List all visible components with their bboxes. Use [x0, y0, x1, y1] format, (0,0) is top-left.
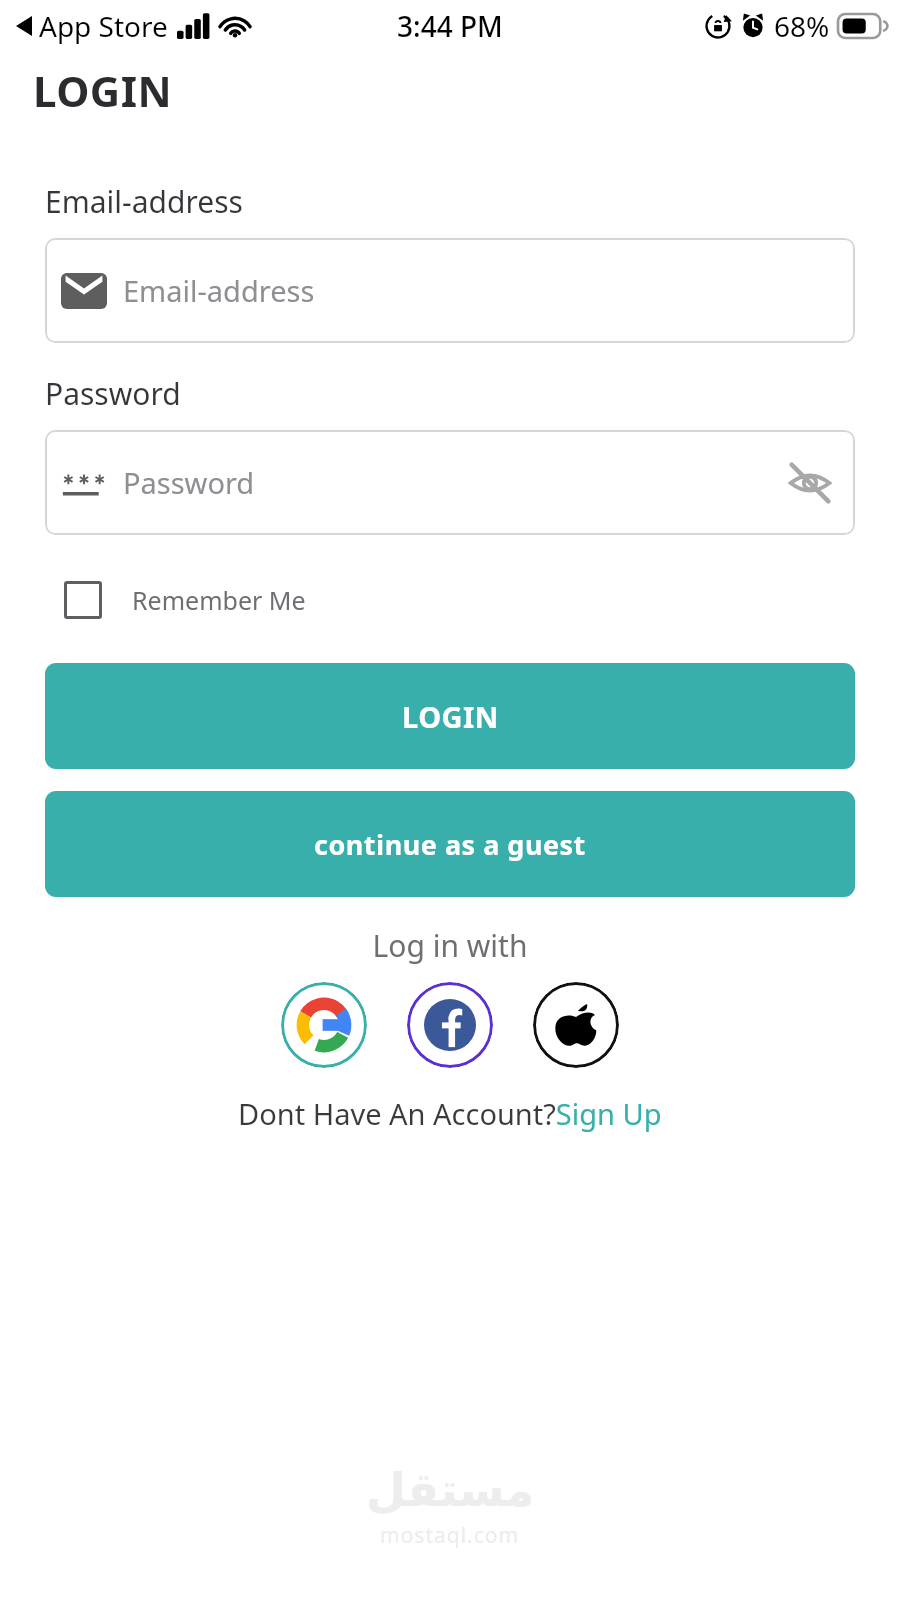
staticText: Email-address [123, 271, 315, 310]
staticText: continue as a guest [314, 826, 586, 863]
staticText: 3:44 PM [397, 7, 503, 45]
button[interactable]: continue as a guest [45, 791, 855, 897]
staticText: Email-address [45, 181, 243, 222]
staticText: Log in with [0, 925, 900, 966]
staticText: Password [123, 463, 255, 502]
button[interactable]: Password [45, 430, 855, 535]
staticText: App Store [39, 7, 168, 45]
button[interactable]: Sign in with Facebook [407, 982, 493, 1068]
button[interactable]: Remember Me [60, 575, 310, 625]
staticText: مستقل [366, 1463, 535, 1517]
button[interactable]: Show password [783, 456, 837, 510]
button[interactable]: Sign in with Google [281, 982, 367, 1068]
button[interactable]: Sign in with Apple [533, 982, 619, 1068]
button[interactable]: Dont Have An Account?Sign Up [234, 1090, 666, 1137]
staticText: mostaql.com [380, 1521, 520, 1550]
button[interactable]: LOGIN [45, 663, 855, 769]
staticText: LOGIN [33, 62, 173, 119]
staticText: LOGIN [402, 697, 499, 736]
button[interactable]: Email-address [45, 238, 855, 343]
staticText: 68% [774, 7, 830, 45]
staticText: Password [45, 373, 181, 414]
staticText: Remember Me [132, 583, 306, 617]
